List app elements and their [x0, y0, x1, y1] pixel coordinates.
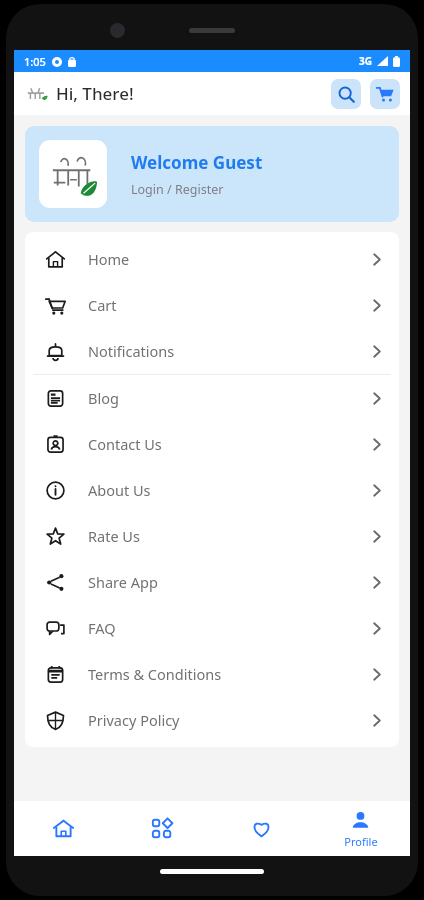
button[interactable]: Cart: [370, 79, 400, 109]
staticText: Welcome Guest: [131, 151, 263, 174]
staticText: Share App: [88, 572, 373, 592]
staticText: 1:05: [24, 54, 46, 69]
staticText: Notifications: [88, 341, 373, 361]
button[interactable]: Categories: [113, 801, 212, 856]
button[interactable]: Rate Us: [25, 513, 399, 559]
button[interactable]: Share App: [25, 559, 399, 605]
button[interactable]: Home: [25, 236, 399, 282]
button[interactable]: Terms & Conditions: [25, 651, 399, 697]
staticText: Privacy Policy: [88, 710, 373, 730]
staticText: Login / Register: [131, 181, 224, 198]
staticText: FAQ: [88, 618, 373, 638]
staticText: Cart: [88, 295, 373, 315]
button[interactable]: Home: [14, 801, 113, 856]
staticText: Blog: [88, 388, 373, 408]
button[interactable]: FAQ: [25, 605, 399, 651]
button[interactable]: Wishlist: [212, 801, 311, 856]
staticText: Terms & Conditions: [88, 664, 373, 684]
staticText: About Us: [88, 480, 373, 500]
button[interactable]: Profile: [311, 801, 410, 856]
staticText: Hi, There!: [56, 82, 134, 105]
staticText: Contact Us: [88, 434, 373, 454]
button[interactable]: Privacy Policy: [25, 697, 399, 743]
button[interactable]: Cart: [25, 282, 399, 328]
button[interactable]: Notifications: [25, 328, 399, 374]
button[interactable]: Welcome Guest: [25, 126, 399, 222]
button[interactable]: About Us: [25, 467, 399, 513]
staticText: Rate Us: [88, 526, 373, 546]
button[interactable]: Search: [331, 79, 361, 109]
staticText: Profile: [344, 834, 378, 849]
staticText: Home: [88, 249, 373, 269]
button[interactable]: Contact Us: [25, 421, 399, 467]
button[interactable]: Blog: [25, 375, 399, 421]
staticText: 3G: [359, 54, 372, 68]
